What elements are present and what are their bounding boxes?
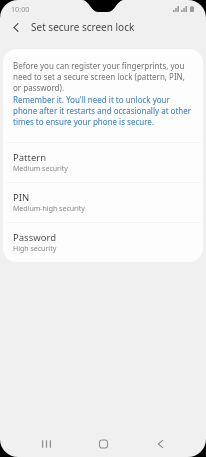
button[interactable]: PIN (3, 183, 203, 222)
staticText: Set secure screen lock (31, 20, 135, 34)
button[interactable]: Password (3, 223, 203, 262)
button[interactable]: Back (132, 431, 189, 457)
button[interactable]: Home (75, 431, 132, 457)
staticText: Pattern (13, 151, 47, 164)
staticText: Medium-high security (13, 204, 85, 214)
staticText: High security (13, 244, 57, 254)
button[interactable]: Pattern (3, 143, 203, 182)
staticText: Before you can register your fingerprint… (13, 60, 193, 93)
staticText: Password (13, 231, 56, 244)
button[interactable]: Recent apps (18, 431, 75, 457)
staticText: PIN (13, 191, 30, 204)
staticText: 10:00 (11, 4, 30, 14)
button[interactable]: Navigate up (5, 15, 27, 39)
staticText: Remember it. You'll need it to unlock yo… (13, 94, 193, 127)
staticText: Medium security (13, 164, 68, 174)
